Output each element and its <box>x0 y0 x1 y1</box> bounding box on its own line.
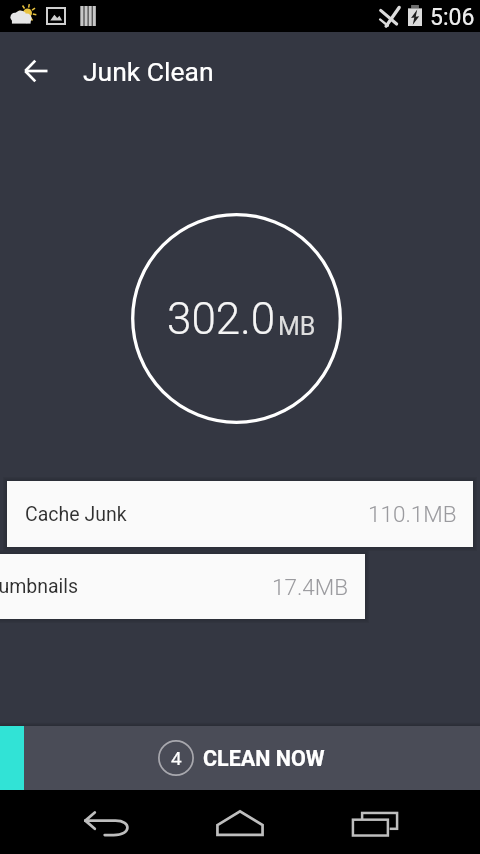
staticText: Cache Junk <box>25 503 127 526</box>
button[interactable]: Thumbnails <box>0 554 365 619</box>
button[interactable]: Back <box>81 802 131 846</box>
staticText: 302.0 <box>167 293 276 345</box>
staticText: Junk Clean <box>83 56 214 87</box>
button[interactable]: Cache Junk <box>7 481 473 547</box>
button[interactable]: Recent apps <box>351 802 399 846</box>
button[interactable]: Home <box>216 801 264 845</box>
button[interactable]: Back <box>12 47 60 95</box>
staticText: 110.1MB <box>368 501 457 527</box>
staticText: 4 <box>171 747 182 769</box>
staticText: 5:06 <box>430 4 475 31</box>
staticText: MB <box>278 312 316 341</box>
staticText: CLEAN NOW <box>203 746 325 771</box>
staticText: Thumbnails <box>0 575 79 598</box>
staticText: 17.4MB <box>272 574 349 600</box>
button[interactable]: 4 <box>0 726 480 790</box>
